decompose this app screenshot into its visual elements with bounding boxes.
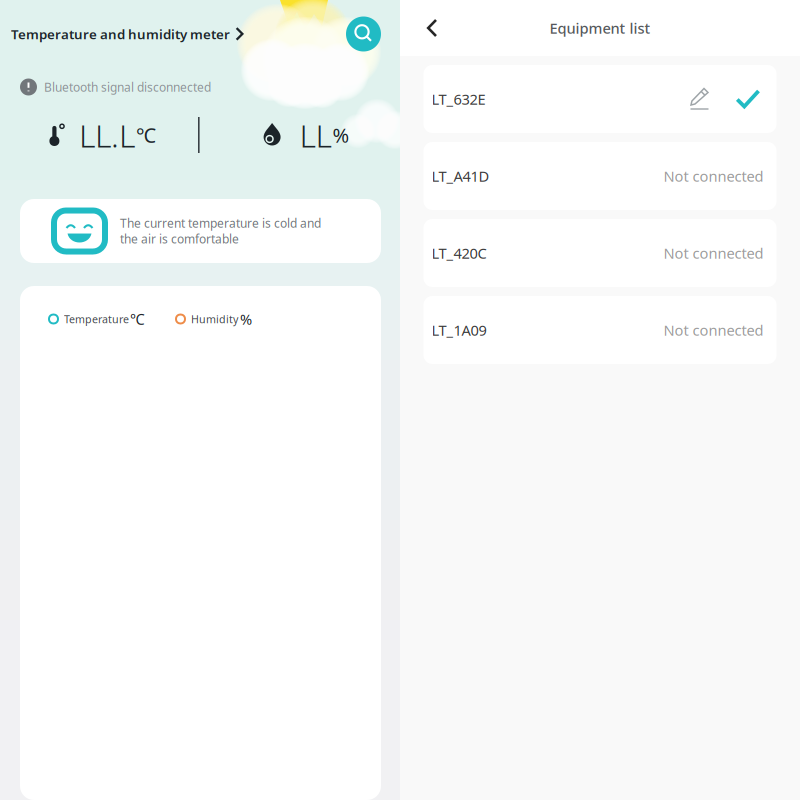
staticText: LT_A41D [431,166,489,186]
button[interactable]: LT_1A09 [423,296,776,364]
staticText: LT_420C [431,243,486,263]
staticText: LT_1A09 [431,320,486,340]
button[interactable]: LT_420C [423,219,776,287]
staticText: LT_632E [431,89,485,109]
button[interactable]: Bluetooth signal disconnected [20,77,211,97]
staticText: Bluetooth signal disconnected [44,79,211,95]
button[interactable]: Humidity [176,310,252,328]
button[interactable]: Temperature and humidity meter [11,17,245,51]
staticText: Temperature [64,312,129,326]
staticText: LL [300,114,332,156]
staticText: Not connected [663,243,763,263]
staticText: ℃ [130,309,145,329]
button[interactable]: LT_632E [423,65,776,133]
staticText: Not connected [663,166,763,186]
button[interactable]: The current temperature is cold and the … [20,199,381,263]
staticText: % [333,122,350,148]
button[interactable]: Back [400,0,452,56]
staticText: LL.L [79,114,135,156]
staticText: Not connected [663,320,763,340]
staticText: The current temperature is cold and the … [120,215,321,247]
button[interactable]: Connected [735,89,760,109]
button[interactable]: LT_A41D [423,142,776,210]
button[interactable]: Temperature [49,310,145,328]
staticText: % [240,309,252,329]
button[interactable]: Search [346,16,381,51]
staticText: Humidity [191,312,238,326]
staticText: Equipment list [549,18,650,38]
button[interactable]: Rename device [689,87,709,111]
staticText: Temperature and humidity meter [11,25,230,43]
staticText: ℃ [136,122,156,148]
